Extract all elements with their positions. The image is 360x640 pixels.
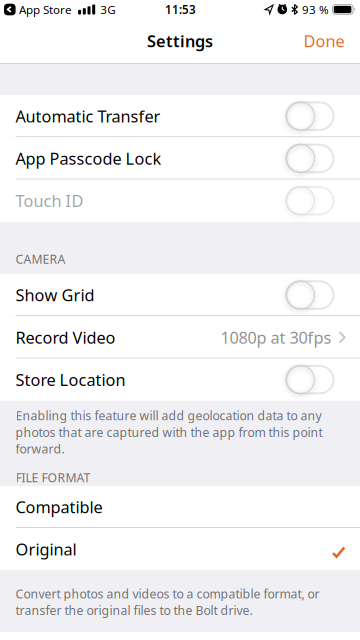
staticText: App Passcode Lock <box>15 147 161 169</box>
staticText: Done <box>303 30 344 52</box>
staticText: Automatic Transfer <box>15 105 160 127</box>
staticText: 1080p at 30fps <box>220 326 331 348</box>
staticText: Show Grid <box>15 284 94 306</box>
button[interactable]: Original <box>0 528 360 570</box>
button[interactable]: Show Grid <box>0 274 360 316</box>
staticText: 93 % <box>302 2 329 17</box>
button[interactable]: Compatible <box>0 486 360 528</box>
button[interactable]: Touch ID <box>0 180 360 222</box>
staticText: Settings <box>147 30 213 52</box>
staticText: CAMERA <box>15 251 65 267</box>
button[interactable]: Store Location <box>0 358 360 401</box>
staticText: Touch ID <box>15 190 83 212</box>
staticText: Store Location <box>15 368 125 391</box>
staticText: Enabling this feature will add geolocati… <box>15 407 322 457</box>
staticText: Convert photos and videos to a compatibl… <box>15 585 319 619</box>
staticText: 11:53 <box>165 2 196 17</box>
staticText: Record Video <box>15 326 115 348</box>
button[interactable]: Automatic Transfer <box>0 95 360 137</box>
button[interactable]: Record Video <box>0 316 360 358</box>
button[interactable]: App Store <box>0 2 72 17</box>
button[interactable]: App Passcode Lock <box>0 137 360 180</box>
button[interactable]: Done <box>303 30 344 52</box>
staticText: Compatible <box>15 496 102 518</box>
staticText: FILE FORMAT <box>15 469 90 486</box>
staticText: Original <box>15 538 76 560</box>
staticText: 3G <box>100 2 115 17</box>
staticText: App Store <box>19 2 72 17</box>
